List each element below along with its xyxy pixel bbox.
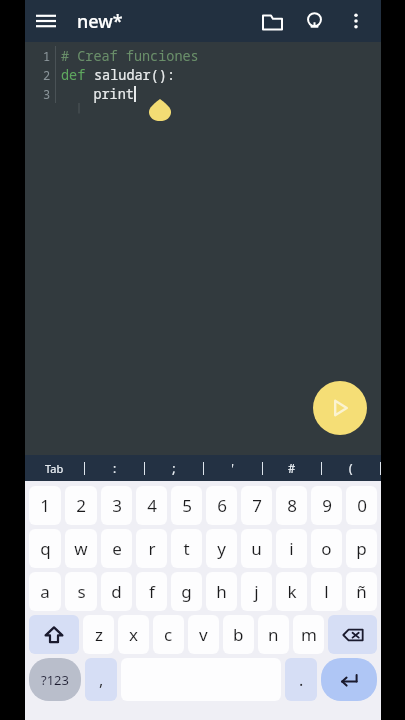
staticText: g xyxy=(181,580,192,603)
button[interactable]: Open folder xyxy=(251,0,293,42)
staticText: 3 xyxy=(112,494,122,517)
button[interactable]: : xyxy=(85,455,144,481)
staticText: new* xyxy=(77,9,123,34)
staticText: q xyxy=(40,537,51,560)
button[interactable]: Hint xyxy=(293,0,335,42)
staticText: w xyxy=(74,537,88,560)
staticText: , xyxy=(99,669,104,691)
staticText: p xyxy=(356,537,367,560)
staticText: r xyxy=(148,537,156,560)
staticText: print xyxy=(61,85,134,103)
staticText: l xyxy=(324,580,329,603)
staticText: # Creaf funciones xyxy=(61,47,199,65)
button[interactable]: l xyxy=(311,572,342,611)
button[interactable]: 6 xyxy=(206,486,237,525)
staticText: o xyxy=(321,537,332,560)
button[interactable]: 2 xyxy=(65,486,97,525)
button[interactable]: n xyxy=(258,615,289,654)
staticText: k xyxy=(287,580,297,603)
button[interactable]: w xyxy=(65,529,97,568)
button[interactable]: ñ xyxy=(346,572,377,611)
button[interactable]: 0 xyxy=(346,486,377,525)
button[interactable]: Backspace xyxy=(328,615,377,654)
button[interactable]: ?123 xyxy=(29,658,81,701)
button[interactable]: r xyxy=(136,529,167,568)
staticText: f xyxy=(149,580,155,603)
button[interactable]: c xyxy=(153,615,184,654)
button[interactable]: u xyxy=(241,529,272,568)
button[interactable]: k xyxy=(276,572,307,611)
button[interactable]: Tab xyxy=(25,455,84,481)
staticText: 0 xyxy=(357,494,367,517)
button[interactable]: x xyxy=(118,615,149,654)
button[interactable]: Shift xyxy=(29,615,79,654)
button[interactable]: t xyxy=(171,529,202,568)
button[interactable]: 4 xyxy=(136,486,167,525)
button[interactable]: m xyxy=(293,615,324,654)
staticText: . xyxy=(299,669,304,691)
staticText: : xyxy=(111,460,119,476)
staticText: c xyxy=(164,623,173,646)
staticText: a xyxy=(40,580,50,603)
button[interactable]: Menu xyxy=(25,0,67,42)
button[interactable]: b xyxy=(223,615,254,654)
staticText: 8 xyxy=(287,494,297,517)
staticText: b xyxy=(233,623,244,646)
button[interactable]: 9 xyxy=(311,486,342,525)
button[interactable]: ; xyxy=(145,455,203,481)
button[interactable]: p xyxy=(346,529,377,568)
staticText: 4 xyxy=(147,494,157,517)
button[interactable]: Run xyxy=(313,381,367,435)
button[interactable]: 8 xyxy=(276,486,307,525)
button[interactable]: o xyxy=(311,529,342,568)
button[interactable]: j xyxy=(241,572,272,611)
button[interactable]: z xyxy=(83,615,114,654)
button[interactable]: , xyxy=(85,658,117,701)
button[interactable]: e xyxy=(101,529,132,568)
button[interactable]: # xyxy=(263,455,321,481)
staticText: ; xyxy=(170,460,178,476)
button[interactable]: ' xyxy=(204,455,262,481)
staticText: 2 xyxy=(43,67,51,83)
staticText: saludar(): xyxy=(94,66,175,84)
staticText: 7 xyxy=(252,494,262,517)
staticText: def xyxy=(61,66,94,84)
button[interactable]: 7 xyxy=(241,486,272,525)
button[interactable]: q xyxy=(29,529,61,568)
button[interactable]: v xyxy=(188,615,219,654)
button[interactable]: g xyxy=(171,572,202,611)
staticText: # xyxy=(288,460,296,476)
button[interactable]: 1 xyxy=(29,486,61,525)
button[interactable]: . xyxy=(285,658,317,701)
button[interactable]: i xyxy=(276,529,307,568)
button[interactable]: f xyxy=(136,572,167,611)
staticText: 9 xyxy=(322,494,332,517)
button[interactable]: ( xyxy=(322,455,380,481)
staticText: i xyxy=(289,537,294,560)
staticText: ( xyxy=(347,460,355,476)
button[interactable]: Enter xyxy=(321,658,377,701)
staticText: 1 xyxy=(40,494,50,517)
staticText: z xyxy=(95,623,103,646)
button[interactable]: More options xyxy=(335,0,377,42)
staticText: e xyxy=(112,537,122,560)
staticText: ñ xyxy=(356,580,367,603)
staticText: Tab xyxy=(45,461,64,476)
button[interactable]: h xyxy=(206,572,237,611)
button[interactable]: 3 xyxy=(101,486,132,525)
staticText: ' xyxy=(229,460,237,476)
staticText: h xyxy=(216,580,227,603)
staticText: 6 xyxy=(217,494,227,517)
button[interactable]: d xyxy=(101,572,132,611)
staticText: s xyxy=(77,580,86,603)
staticText: ?123 xyxy=(41,671,69,689)
staticText: u xyxy=(251,537,262,560)
button[interactable]: s xyxy=(65,572,97,611)
staticText: j xyxy=(254,580,259,603)
staticText: v xyxy=(199,623,208,646)
button[interactable]: y xyxy=(206,529,237,568)
button[interactable]: 5 xyxy=(171,486,202,525)
button[interactable]: a xyxy=(29,572,61,611)
staticText: y xyxy=(217,537,226,560)
